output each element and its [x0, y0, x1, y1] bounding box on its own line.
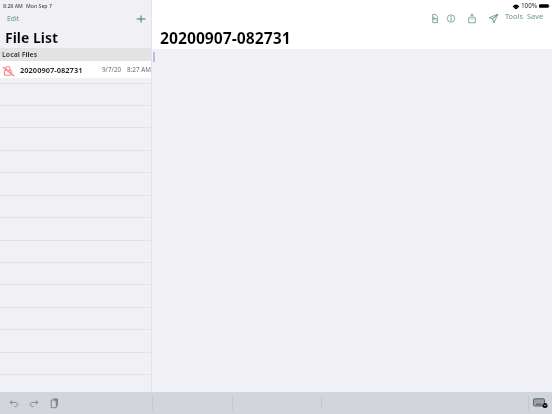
button[interactable]: Add	[135, 12, 147, 26]
staticText: 9/7/20	[102, 65, 122, 74]
button[interactable]: Document	[432, 11, 438, 25]
button[interactable]: Undo	[7, 396, 21, 410]
staticText: 100%	[521, 1, 538, 10]
staticText: 20200907-082731	[20, 65, 83, 75]
staticText: Local Files	[2, 50, 38, 59]
staticText: Mon Sep 7	[26, 2, 52, 9]
staticText: Save	[527, 11, 544, 21]
button[interactable]: Redo	[27, 396, 41, 410]
button[interactable]: Paste	[47, 396, 61, 410]
button[interactable]: Send	[489, 11, 498, 25]
staticText: Edit	[7, 14, 20, 23]
staticText: 8:27 AM	[127, 65, 151, 74]
staticText: File List	[5, 28, 59, 47]
staticText: 20200907-082731	[160, 27, 291, 48]
button[interactable]: Save	[525, 11, 546, 21]
button[interactable]: Edit	[4, 12, 23, 25]
button[interactable]: Share	[468, 11, 476, 25]
button[interactable]: Hide keyboard	[531, 394, 549, 412]
staticText: 8:28 AM	[3, 2, 23, 9]
button[interactable]: Info	[447, 11, 455, 25]
button[interactable]: 20200907-082731	[0, 61, 151, 78]
staticText: Tools	[505, 11, 523, 21]
button[interactable]: Tools	[503, 11, 525, 21]
